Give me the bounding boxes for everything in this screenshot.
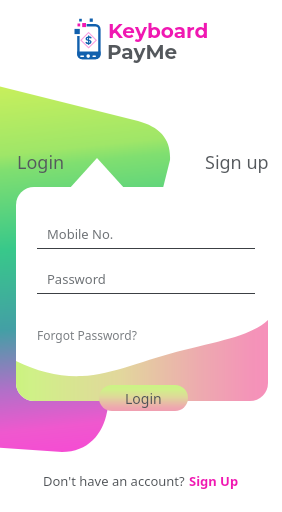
- button[interactable]: Forgot Password?: [35, 325, 139, 345]
- staticText: Mobile No.: [47, 225, 114, 243]
- staticText: Forgot Password?: [37, 327, 137, 343]
- staticText: Login: [17, 150, 65, 175]
- button[interactable]: Login: [10, 146, 72, 178]
- button[interactable]: Sign up: [197, 146, 277, 178]
- staticText: Don't have an account?: [43, 472, 189, 490]
- staticText: Password: [47, 270, 106, 288]
- button[interactable]: Sign Up: [189, 472, 239, 490]
- staticText: PayMe: [107, 40, 178, 64]
- staticText: Keyboard: [108, 19, 209, 43]
- other: KeyboardPayMe logo: [72, 14, 104, 62]
- button[interactable]: Password: [37, 270, 255, 302]
- button[interactable]: Login: [99, 385, 188, 411]
- staticText: Sign up: [205, 150, 269, 175]
- button[interactable]: Mobile No.: [37, 225, 255, 257]
- staticText: Login: [125, 389, 162, 408]
